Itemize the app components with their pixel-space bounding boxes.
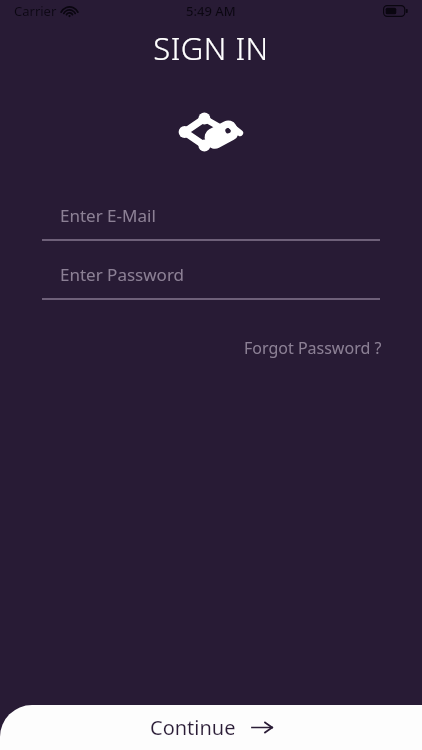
staticText: Enter Password xyxy=(60,263,185,286)
staticText: Enter E-Mail xyxy=(60,204,156,227)
staticText: Forgot Password ? xyxy=(244,337,382,359)
staticText: 5:49 AM xyxy=(186,2,236,20)
button[interactable]: Forgot Password ? xyxy=(240,334,386,362)
button[interactable]: Continue xyxy=(0,705,422,750)
button[interactable]: Enter Password xyxy=(42,263,380,300)
staticText: Carrier xyxy=(14,2,57,20)
staticText: Continue xyxy=(150,714,236,741)
button[interactable]: Enter E-Mail xyxy=(42,204,380,241)
staticText: SIGN IN xyxy=(0,27,422,69)
